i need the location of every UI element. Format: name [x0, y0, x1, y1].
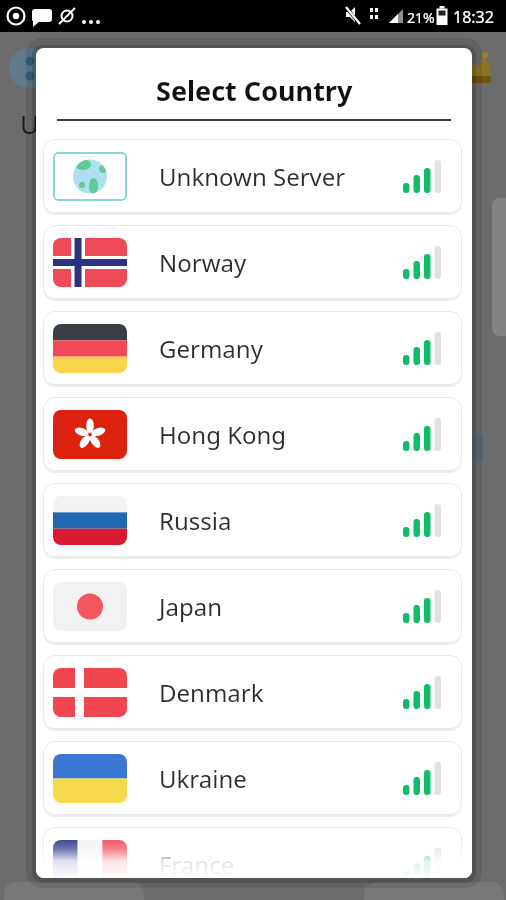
staticText: U: [20, 106, 40, 141]
button[interactable]: Denmark: [43, 655, 462, 729]
staticText: France: [159, 848, 235, 878]
staticText: Germany: [159, 332, 263, 365]
staticText: Hong Kong: [159, 418, 287, 451]
staticText: Norway: [159, 246, 247, 279]
button[interactable]: Norway: [43, 225, 462, 299]
button[interactable]: Japan: [43, 569, 462, 643]
staticText: Ukraine: [159, 762, 247, 795]
button[interactable]: Unknown Server: [43, 139, 462, 213]
staticText: Denmark: [159, 676, 264, 709]
staticText: 18:32: [453, 6, 494, 28]
button[interactable]: Ukraine: [43, 741, 462, 815]
button[interactable]: Germany: [43, 311, 462, 385]
button[interactable]: France: [43, 827, 462, 878]
button[interactable]: Russia: [43, 483, 462, 557]
staticText: Japan: [159, 590, 223, 623]
staticText: 21%: [407, 8, 435, 27]
staticText: Select Country: [156, 72, 353, 109]
staticText: Unknown Server: [159, 160, 346, 193]
staticText: Russia: [159, 504, 232, 537]
button[interactable]: Hong Kong: [43, 397, 462, 471]
